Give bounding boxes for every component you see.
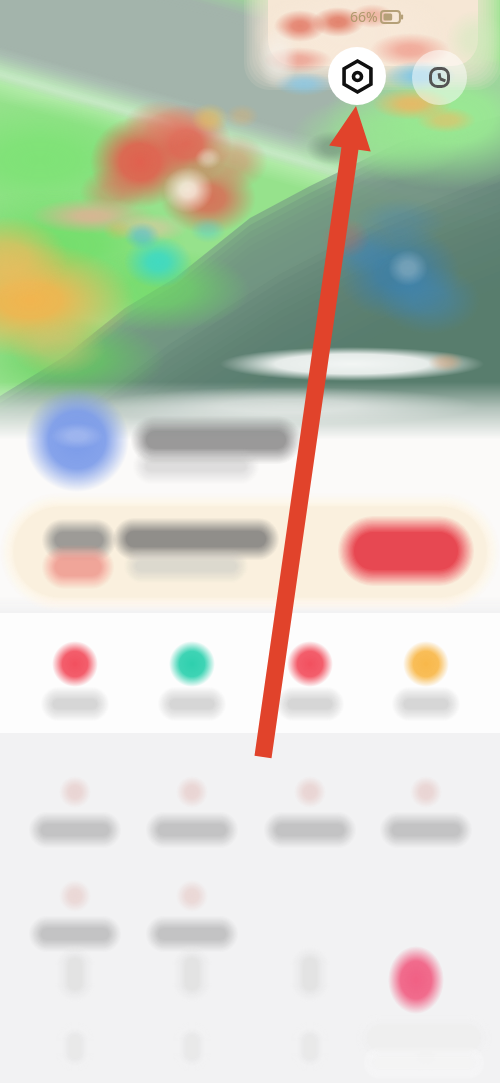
button[interactable]: Locate me — [328, 47, 386, 105]
button[interactable]: Recent history — [412, 50, 467, 105]
staticText: 66% — [350, 7, 378, 26]
